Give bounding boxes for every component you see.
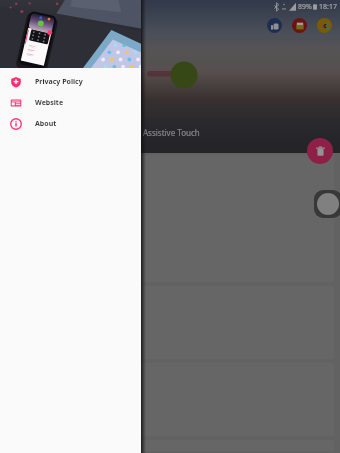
staticText: Privacy Policy	[35, 77, 83, 87]
button[interactable]: Privacy Policy	[0, 71, 141, 92]
button[interactable]: About	[0, 113, 141, 134]
button[interactable]: Delete	[307, 138, 333, 164]
button[interactable]	[8, 155, 334, 282]
staticText: 18:17	[319, 2, 337, 12]
staticText: Website	[35, 98, 64, 108]
button[interactable]: Website	[0, 92, 141, 113]
button[interactable]: Facebook	[267, 18, 282, 33]
button[interactable]: Email	[292, 18, 307, 33]
button[interactable]	[8, 440, 334, 451]
staticText: 89%	[298, 2, 312, 12]
button[interactable]	[8, 363, 334, 436]
staticText: Assistive Touch	[143, 127, 200, 138]
button[interactable]: Assistive touch	[314, 190, 340, 218]
button[interactable]: Share	[317, 18, 332, 33]
staticText: About	[35, 119, 57, 129]
button[interactable]	[8, 286, 334, 359]
